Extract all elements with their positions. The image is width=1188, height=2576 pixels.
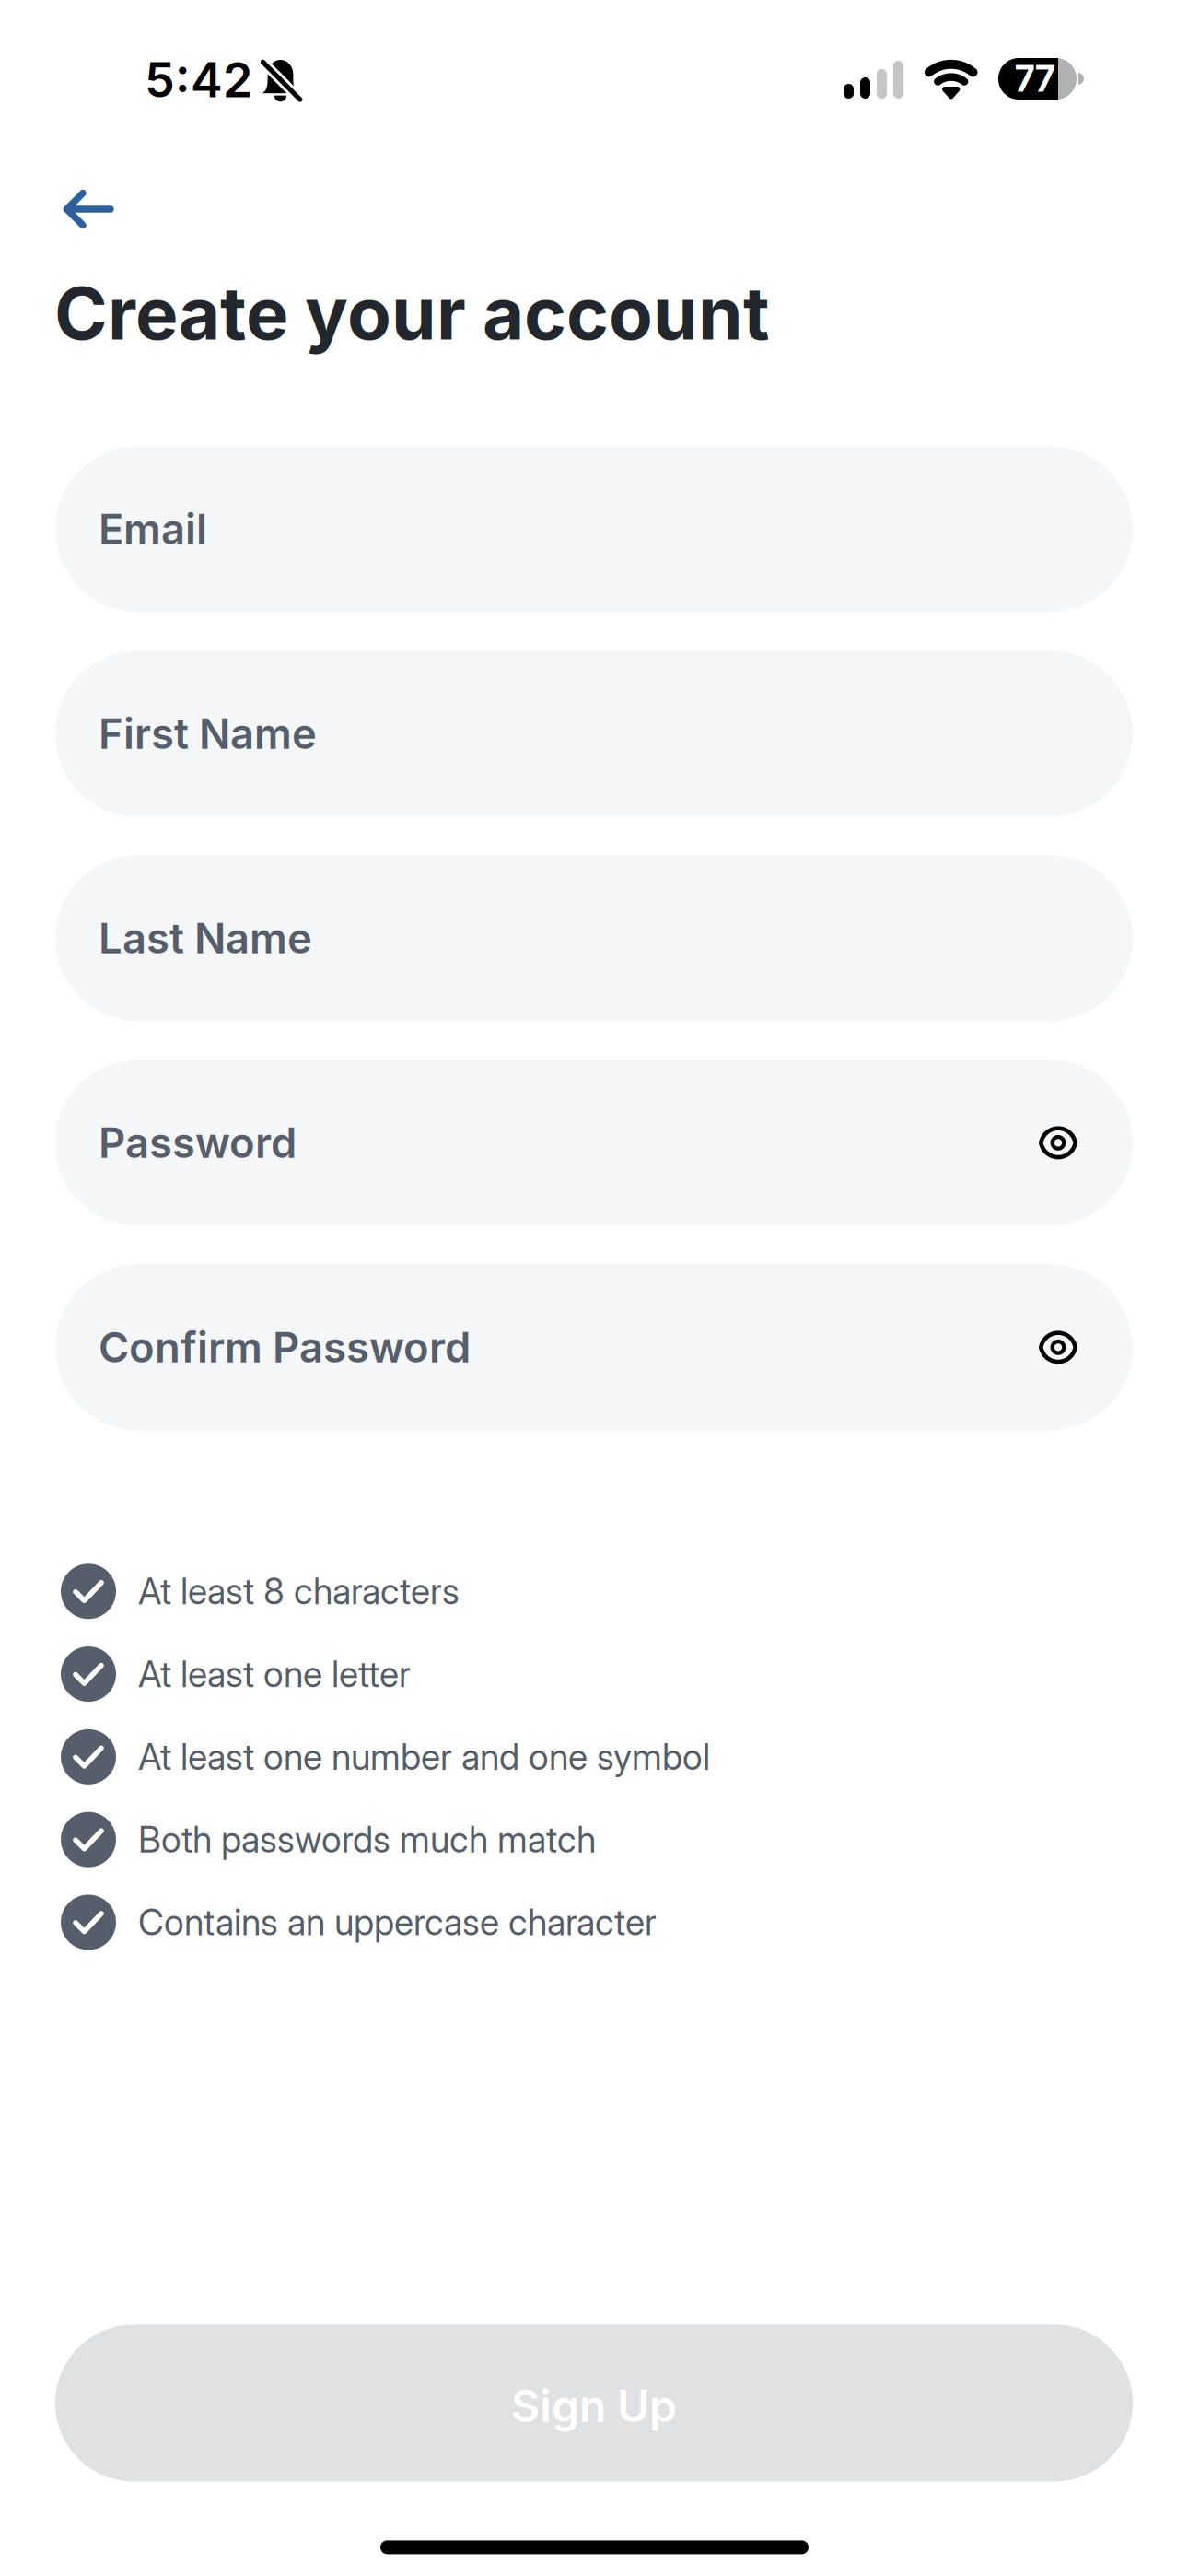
button[interactable]: Last Name	[55, 855, 1133, 1021]
staticText: Email	[99, 504, 207, 555]
staticText: Password	[99, 1118, 297, 1168]
staticText: Confirm Password	[99, 1322, 471, 1373]
button[interactable]: Confirm Password	[55, 1264, 1133, 1430]
staticText: At least one letter	[138, 1653, 411, 1696]
button[interactable]: First Name	[55, 651, 1133, 817]
staticText: Last Name	[99, 913, 312, 964]
staticText: At least one number and one symbol	[138, 1735, 710, 1778]
button[interactable]: Email	[55, 446, 1133, 612]
staticText: First Name	[99, 708, 317, 759]
button[interactable]: Show Password	[1023, 1099, 1093, 1187]
staticText: Both passwords much match	[138, 1818, 596, 1861]
button[interactable]: Show Confirm Password	[1023, 1303, 1093, 1392]
staticText: Contains an uppercase character	[138, 1901, 657, 1944]
button[interactable]: Back	[40, 170, 136, 249]
staticText: At least 8 characters	[138, 1570, 460, 1613]
staticText: 77	[1015, 57, 1054, 100]
button[interactable]: Sign Up	[55, 2325, 1133, 2481]
button[interactable]: Password	[55, 1060, 1133, 1226]
staticText: 5:42	[145, 51, 252, 109]
staticText: Create your account	[54, 270, 770, 357]
staticText: Sign Up	[511, 2379, 677, 2433]
